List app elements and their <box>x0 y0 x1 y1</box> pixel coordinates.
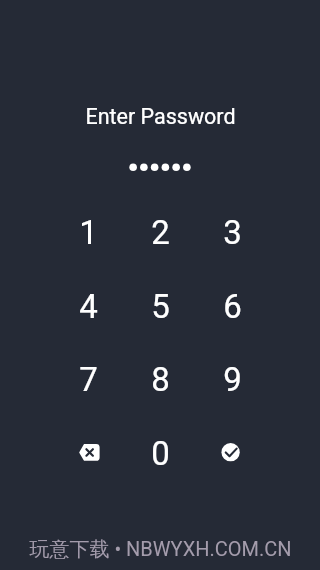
button[interactable]: 0 <box>124 417 196 489</box>
staticText: 5 <box>151 287 170 326</box>
button[interactable]: 1 <box>52 196 124 268</box>
staticText: 2 <box>151 213 170 252</box>
staticText: Enter Password <box>85 104 236 129</box>
staticText: 7 <box>79 360 98 399</box>
button[interactable]: 6 <box>196 270 268 342</box>
staticText: 6 <box>223 287 242 326</box>
button[interactable]: Delete <box>52 417 124 489</box>
button[interactable]: 3 <box>196 196 268 268</box>
staticText: 0 <box>151 434 170 473</box>
staticText: 3 <box>223 213 242 252</box>
staticText: 4 <box>79 287 98 326</box>
button[interactable]: Confirm <box>196 417 268 489</box>
staticText: 9 <box>223 360 242 399</box>
staticText: 1 <box>79 213 98 252</box>
button[interactable]: 8 <box>124 343 196 415</box>
button[interactable]: 9 <box>196 343 268 415</box>
staticText: 玩意下载 • NBWYXH.COM.CN <box>29 537 292 562</box>
button[interactable]: 5 <box>124 270 196 342</box>
staticText: 8 <box>151 360 170 399</box>
button[interactable]: 4 <box>52 270 124 342</box>
button[interactable]: 2 <box>124 196 196 268</box>
button[interactable]: 7 <box>52 343 124 415</box>
